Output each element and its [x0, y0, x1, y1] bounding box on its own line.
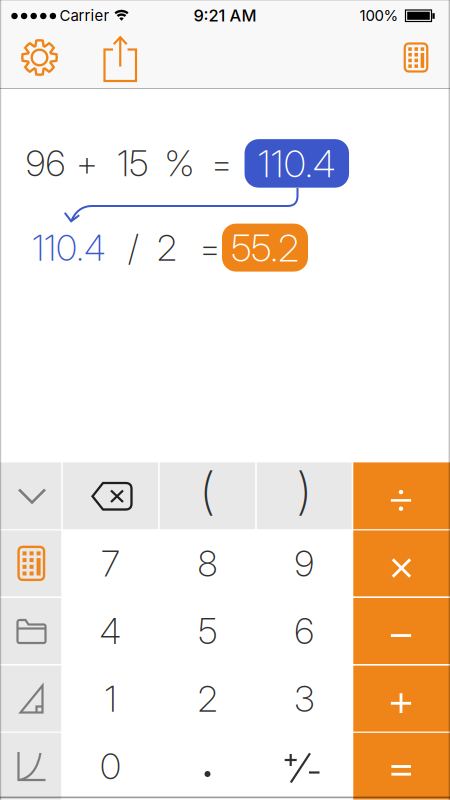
staticText: 5 [198, 609, 217, 653]
button[interactable]: 7 [63, 530, 158, 596]
staticText: 110.4 [258, 140, 336, 186]
staticText: 2 [157, 226, 177, 269]
button[interactable] [0, 666, 61, 732]
staticText: 9 [294, 542, 314, 585]
staticText: ) [296, 460, 313, 521]
button[interactable]: 4 [63, 598, 158, 664]
button[interactable]: 5 [160, 598, 255, 664]
button[interactable]: 6 [257, 598, 352, 664]
button[interactable]: 3 [257, 666, 352, 732]
staticText: / [128, 226, 139, 269]
button[interactable] [257, 462, 352, 529]
button[interactable]: 1 [63, 666, 158, 732]
staticText: 55.2 [231, 225, 299, 271]
staticText: ( [199, 460, 216, 521]
button[interactable] [353, 733, 450, 800]
staticText: + [76, 141, 98, 185]
staticText: 3 [294, 677, 314, 720]
button[interactable] [353, 666, 450, 732]
button[interactable]: 55.2 [222, 224, 308, 272]
button[interactable]: 8 [160, 530, 255, 596]
staticText: 9:21 AM [193, 5, 256, 25]
button[interactable] [0, 733, 61, 800]
button[interactable]: 9 [257, 530, 352, 596]
staticText: 15 [117, 141, 148, 185]
staticText: 110.4 [32, 226, 106, 269]
staticText: 1 [104, 677, 116, 720]
button[interactable] [98, 35, 142, 79]
button[interactable] [63, 462, 158, 529]
button[interactable] [353, 530, 450, 596]
button[interactable] [353, 462, 450, 529]
button[interactable]: 110.4 [245, 139, 349, 188]
staticText: 4 [99, 609, 121, 653]
staticText: 7 [101, 542, 120, 585]
staticText: 96 [25, 141, 65, 185]
staticText: 0 [100, 744, 121, 788]
staticText: 8 [197, 542, 217, 585]
button[interactable] [0, 598, 61, 664]
button[interactable] [17, 35, 61, 79]
button[interactable] [160, 733, 255, 800]
staticText: 2 [197, 677, 217, 720]
button[interactable] [0, 462, 61, 529]
button[interactable] [0, 530, 61, 596]
staticText: 100% [359, 6, 398, 24]
staticText: = [199, 226, 221, 269]
button[interactable] [257, 733, 352, 800]
button[interactable]: 0 [63, 733, 158, 800]
button[interactable]: 2 [160, 666, 255, 732]
staticText: Carrier [59, 6, 109, 24]
button[interactable] [353, 598, 450, 664]
staticText: % [165, 141, 195, 185]
button[interactable] [394, 35, 438, 79]
staticText: 6 [294, 609, 314, 653]
staticText: = [211, 141, 233, 185]
button[interactable] [160, 462, 255, 529]
